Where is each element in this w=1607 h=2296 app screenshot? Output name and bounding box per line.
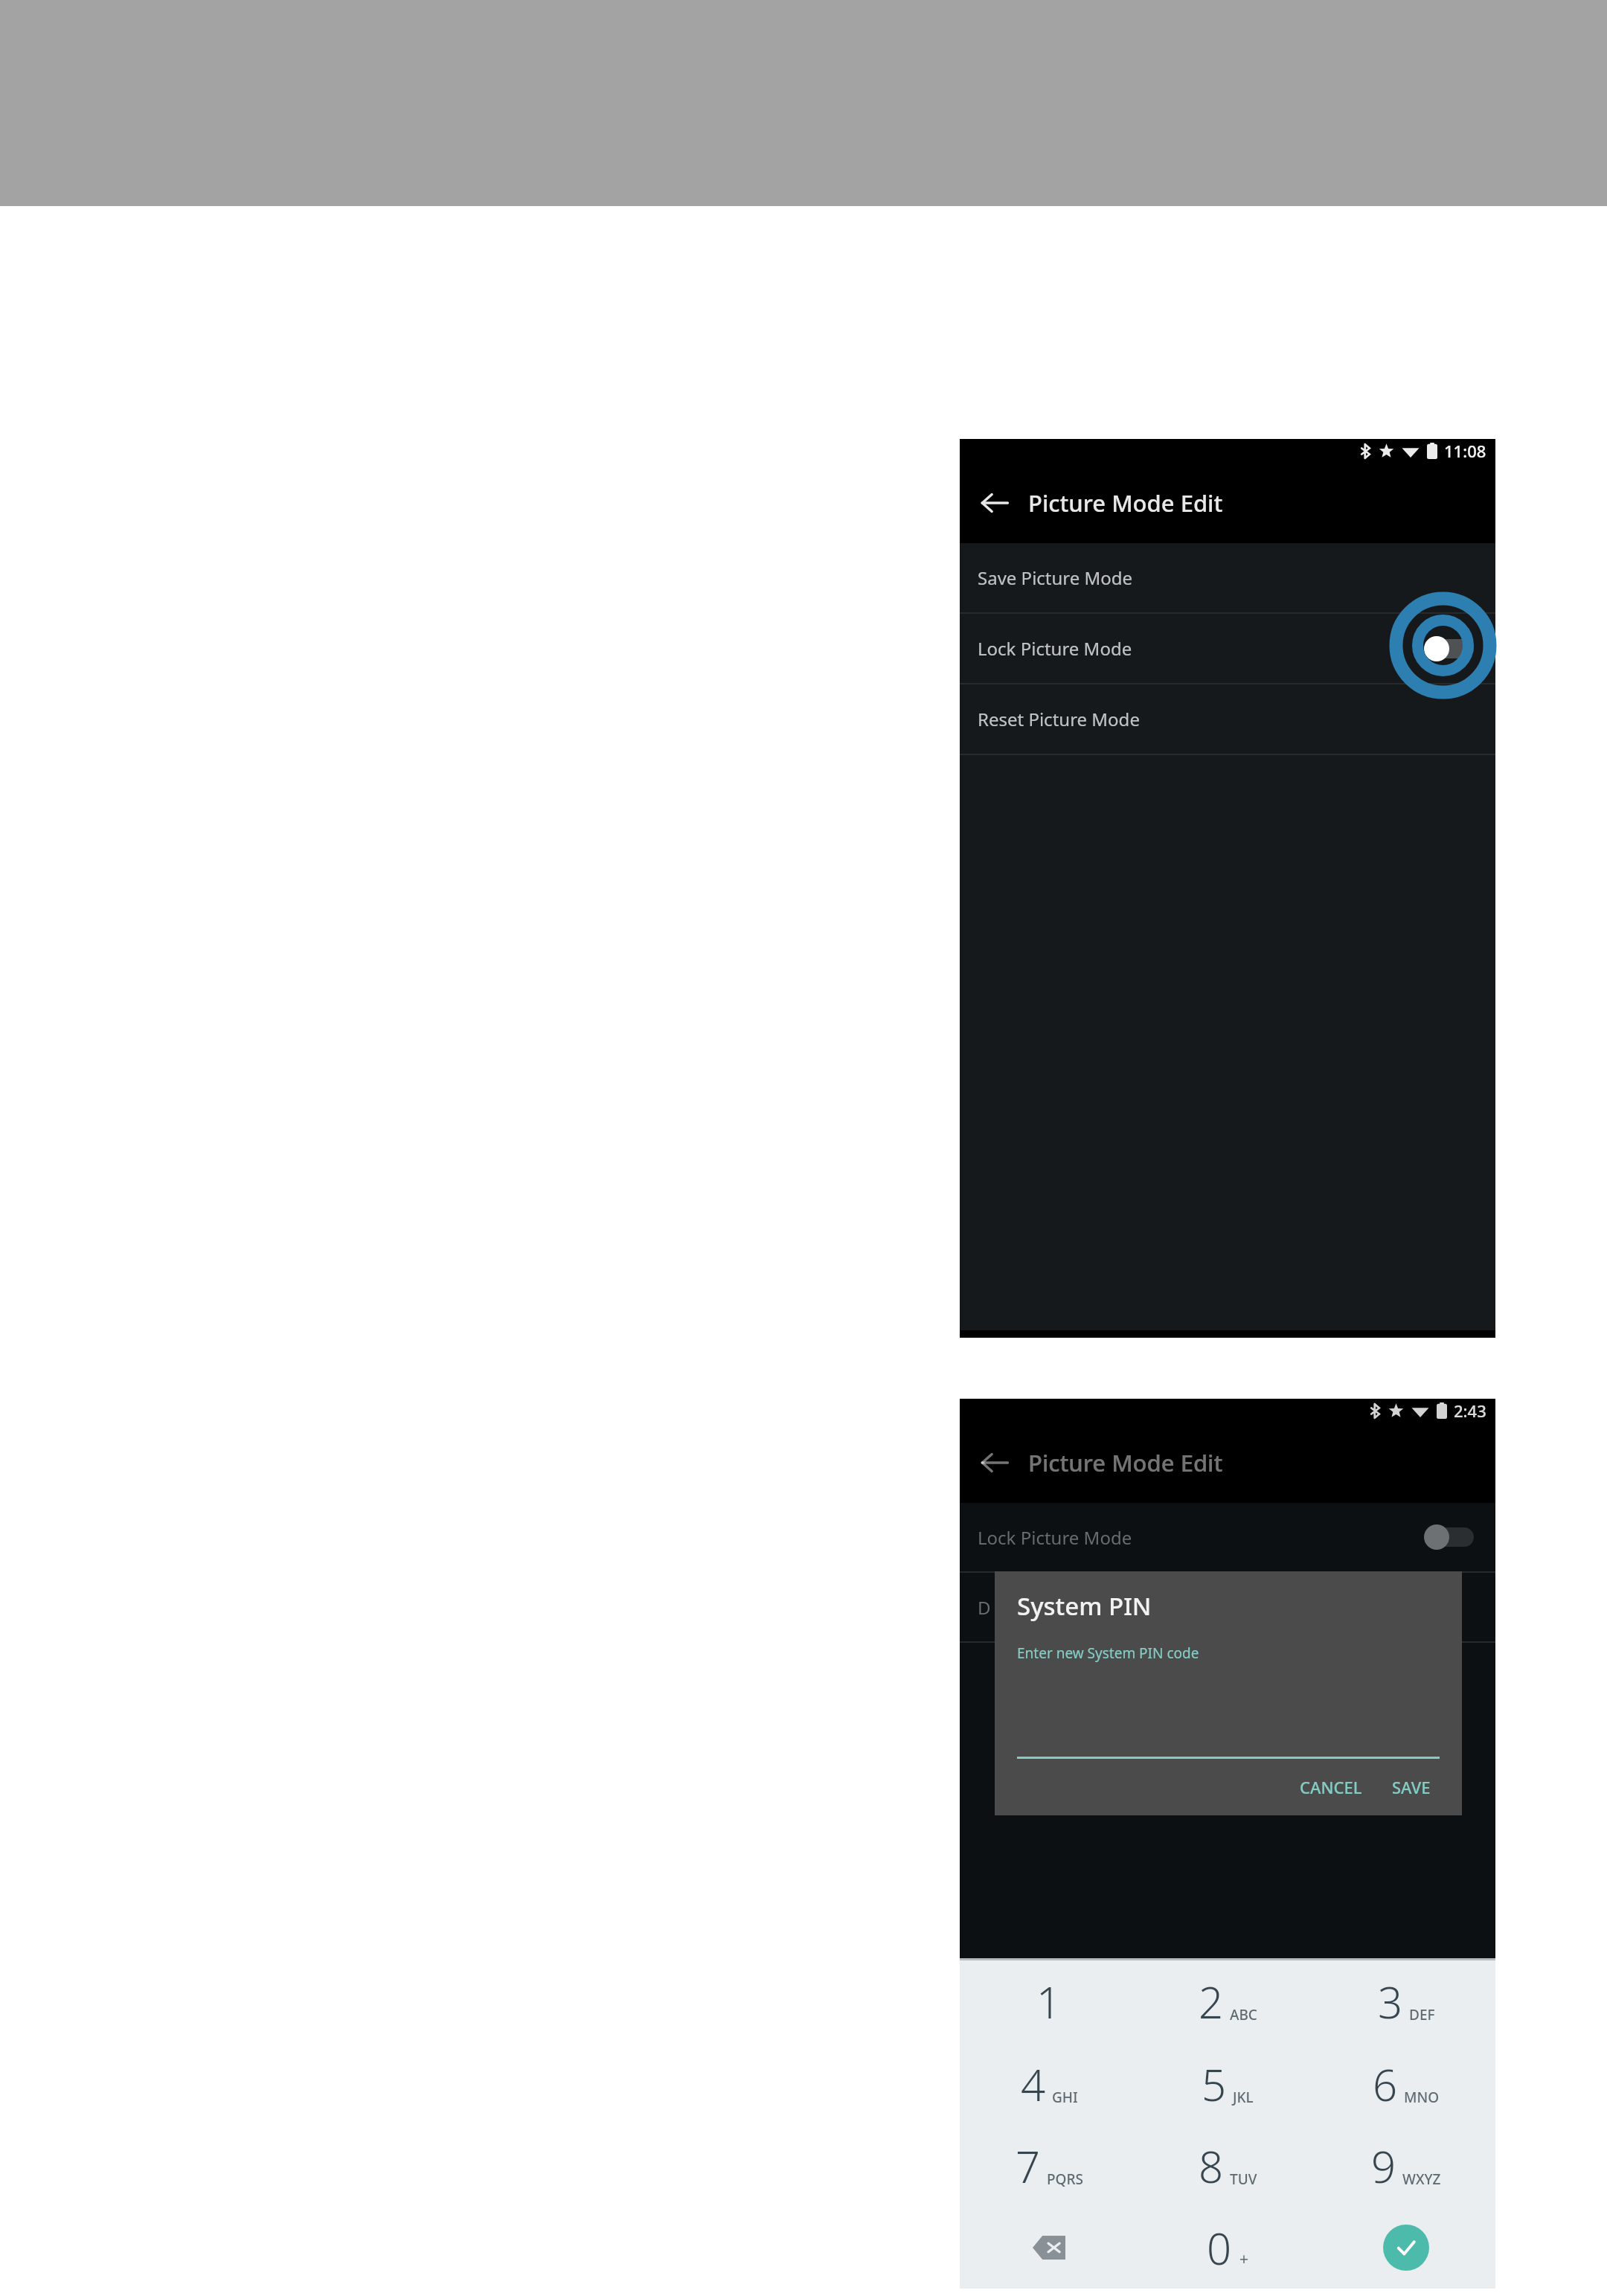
button[interactable]: Save Picture Mode: [960, 543, 1495, 612]
button[interactable]: Reset Picture Mode: [960, 684, 1495, 754]
staticText: 2: [1199, 1972, 1224, 2031]
staticText: Lock Picture Mode: [978, 636, 1424, 661]
button[interactable]: 6: [1317, 2043, 1495, 2125]
button[interactable]: Lock Picture Mode: [960, 614, 1495, 683]
staticText: 7: [1016, 2137, 1041, 2196]
button[interactable]: 8: [1138, 2125, 1317, 2207]
staticText: Enter new System PIN code: [1017, 1644, 1199, 1663]
staticText: CANCEL: [1300, 1776, 1362, 1798]
button[interactable]: 2: [1138, 1960, 1317, 2043]
staticText: GHI: [1052, 2088, 1078, 2107]
staticText: Lock Picture Mode: [978, 1525, 1424, 1550]
button[interactable]: 4: [960, 2043, 1138, 2125]
staticText: Save Picture Mode: [978, 565, 1478, 590]
button[interactable]: Lock Picture Mode toggle: [1424, 633, 1478, 664]
staticText: Picture Mode Edit: [1028, 1447, 1223, 1478]
button[interactable]: 1: [960, 1960, 1138, 2043]
staticText: 4: [1021, 2055, 1046, 2114]
staticText: 5: [1202, 2055, 1227, 2114]
button[interactable]: Lock Picture Mode: [960, 1503, 1495, 1571]
staticText: Picture Mode Edit: [1028, 487, 1223, 519]
staticText: JKL: [1233, 2088, 1254, 2107]
staticText: 6: [1373, 2055, 1398, 2114]
staticText: 2:43: [1454, 1399, 1486, 1422]
button[interactable]: 7: [960, 2125, 1138, 2207]
button[interactable]: Back: [967, 1435, 1022, 1490]
staticText: 8: [1199, 2137, 1224, 2196]
button[interactable]: Backspace: [960, 2207, 1138, 2289]
button[interactable]: Confirm: [1317, 2207, 1495, 2289]
button[interactable]: 3: [1317, 1960, 1495, 2043]
staticText: ABC: [1230, 2005, 1257, 2024]
staticText: 11:08: [1444, 440, 1486, 462]
staticText: D: [978, 1595, 1478, 1620]
button[interactable]: Lock Picture Mode toggle: [1424, 1521, 1478, 1553]
button[interactable]: 9: [1317, 2125, 1495, 2207]
staticText: DEF: [1409, 2005, 1435, 2024]
staticText: +: [1239, 2248, 1249, 2270]
button[interactable]: Back: [967, 475, 1022, 530]
button[interactable]: D: [960, 1573, 1495, 1641]
staticText: TUV: [1230, 2170, 1257, 2189]
staticText: PQRS: [1047, 2170, 1083, 2189]
staticText: 3: [1378, 1972, 1403, 2031]
staticText: Reset Picture Mode: [978, 707, 1478, 731]
staticText: 1: [1036, 1972, 1062, 2031]
staticText: 0: [1207, 2219, 1232, 2277]
staticText: System PIN: [1017, 1589, 1152, 1623]
staticText: MNO: [1404, 2088, 1440, 2107]
button[interactable]: CANCEL: [1291, 1767, 1371, 1807]
staticText: WXYZ: [1402, 2170, 1441, 2189]
button[interactable]: 0: [1138, 2207, 1317, 2289]
staticText: SAVE: [1392, 1776, 1431, 1798]
button[interactable]: 5: [1138, 2043, 1317, 2125]
button[interactable]: SAVE: [1383, 1767, 1440, 1807]
staticText: 9: [1371, 2137, 1396, 2196]
